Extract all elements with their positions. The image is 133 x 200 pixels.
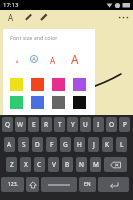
button[interactable]: Eraser [35, 10, 51, 24]
button[interactable]: J [88, 137, 99, 152]
button[interactable]: W [15, 117, 26, 132]
staticText: I [97, 120, 100, 129]
button[interactable]: B [62, 157, 73, 172]
staticText: T [58, 120, 62, 129]
button[interactable]: V [48, 157, 59, 172]
staticText: C [37, 160, 42, 169]
button[interactable]: A [26, 51, 42, 67]
staticText: 123. [8, 181, 18, 188]
button[interactable]: EN [79, 177, 96, 192]
staticText: H [77, 140, 82, 149]
button[interactable]: D [32, 137, 43, 152]
button[interactable]: H [74, 137, 85, 152]
button[interactable]: E [28, 117, 39, 132]
staticText: 17:13 [3, 1, 19, 9]
button[interactable]: A [9, 53, 25, 69]
button[interactable]: A [45, 52, 61, 68]
button[interactable]: Space [41, 177, 77, 192]
button[interactable]: G [60, 137, 71, 152]
button[interactable]: Backspace [104, 157, 127, 172]
button[interactable]: U [80, 117, 91, 132]
button[interactable]: T [54, 117, 65, 132]
button[interactable]: S [18, 137, 29, 152]
button[interactable]: X [20, 157, 31, 172]
button[interactable]: Enter [98, 177, 129, 192]
button[interactable]: More options [116, 10, 130, 24]
button[interactable]: 123. [1, 177, 24, 192]
button[interactable]: Text style [3, 10, 19, 24]
button[interactable]: Shift [26, 177, 39, 192]
button[interactable]: F [46, 137, 57, 152]
staticText: Y [71, 120, 75, 129]
staticText: P [123, 120, 127, 129]
button[interactable]: I [93, 117, 104, 132]
staticText: N [79, 160, 84, 169]
staticText: Q [5, 120, 11, 129]
button[interactable]: R [41, 117, 52, 132]
staticText: U [83, 120, 88, 129]
staticText: E [32, 120, 36, 129]
staticText: D [35, 140, 40, 149]
staticText: M [93, 160, 99, 169]
staticText: S [22, 140, 26, 149]
staticText: A [71, 51, 79, 67]
staticText: Font size and color [10, 34, 58, 41]
button[interactable]: Pen [19, 10, 35, 24]
staticText: A [8, 12, 14, 23]
button[interactable]: Z [6, 157, 17, 172]
button[interactable]: N [76, 157, 87, 172]
button[interactable]: C [34, 157, 45, 172]
button[interactable]: Y [67, 117, 78, 132]
staticText: W [17, 120, 24, 129]
staticText: A [7, 140, 12, 149]
staticText: A [16, 59, 19, 64]
button[interactable]: A [67, 51, 83, 67]
button[interactable]: P [119, 117, 130, 132]
staticText: B [65, 160, 70, 169]
button[interactable]: L [116, 137, 127, 152]
button[interactable]: Q [2, 117, 13, 132]
staticText: A [50, 55, 56, 66]
staticText: G [63, 140, 68, 149]
staticText: R [44, 120, 49, 129]
staticText: J [93, 140, 95, 149]
button[interactable]: K [102, 137, 113, 152]
staticText: L [120, 140, 124, 149]
staticText: X [24, 160, 28, 169]
staticText: V [52, 160, 56, 169]
button[interactable]: O [106, 117, 117, 132]
staticText: Z [10, 160, 14, 169]
staticText: K [105, 140, 110, 149]
staticText: O [109, 120, 115, 129]
staticText: A [32, 55, 36, 63]
staticText: F [50, 140, 54, 149]
staticText: EN [84, 181, 91, 188]
button[interactable]: A [4, 137, 15, 152]
button[interactable]: M [90, 157, 101, 172]
